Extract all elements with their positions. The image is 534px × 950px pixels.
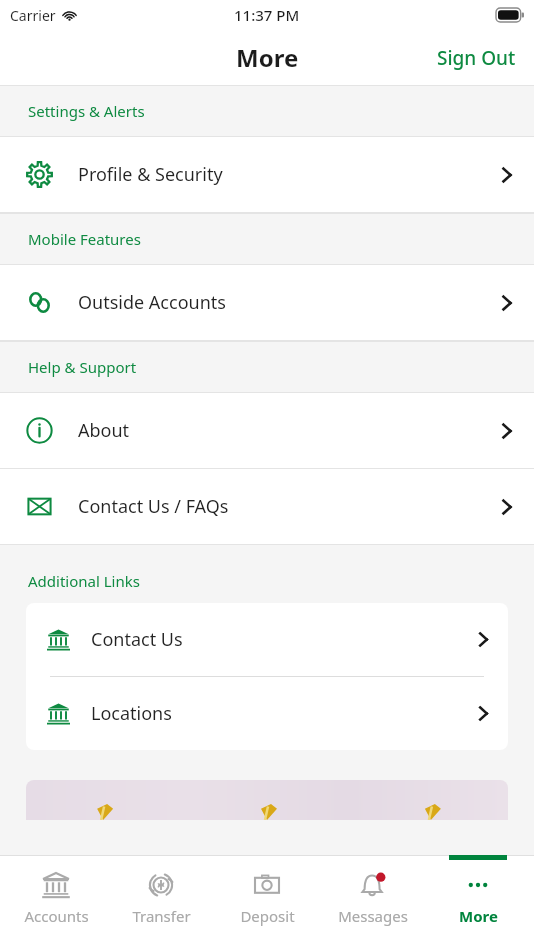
button[interactable]: Locations <box>26 677 508 750</box>
button[interactable]: Sign Out <box>419 37 534 79</box>
button[interactable] <box>26 780 508 820</box>
staticText: Outside Accounts <box>78 290 480 315</box>
staticText: Help & Support <box>28 357 137 377</box>
button[interactable]: More <box>428 856 528 950</box>
button[interactable]: Deposit <box>217 856 317 950</box>
staticText: Additional Links <box>28 571 140 591</box>
button[interactable]: Profile & Security <box>0 137 534 213</box>
button[interactable]: Contact Us <box>26 603 508 676</box>
button[interactable]: About <box>0 393 534 469</box>
staticText: About <box>78 418 480 443</box>
staticText: Mobile Features <box>28 229 141 249</box>
staticText: 11:37 PM <box>234 5 300 25</box>
staticText: Settings & Alerts <box>28 101 145 121</box>
staticText: Profile & Security <box>78 162 480 187</box>
button[interactable]: Messages <box>323 856 423 950</box>
staticText: Transfer <box>132 906 191 926</box>
staticText: Accounts <box>24 906 89 926</box>
button[interactable]: Contact Us / FAQs <box>0 469 534 545</box>
button[interactable]: Accounts <box>6 856 106 950</box>
staticText: Contact Us / FAQs <box>78 494 480 519</box>
staticText: Sign Out <box>437 45 516 71</box>
staticText: Carrier <box>10 6 56 25</box>
staticText: Messages <box>338 906 408 926</box>
button[interactable]: Outside Accounts <box>0 265 534 341</box>
staticText: Locations <box>91 701 458 726</box>
staticText: More <box>459 906 498 926</box>
staticText: Deposit <box>240 906 295 926</box>
button[interactable]: Transfer <box>111 856 211 950</box>
staticText: Contact Us <box>91 627 458 652</box>
staticText: More <box>236 41 299 74</box>
